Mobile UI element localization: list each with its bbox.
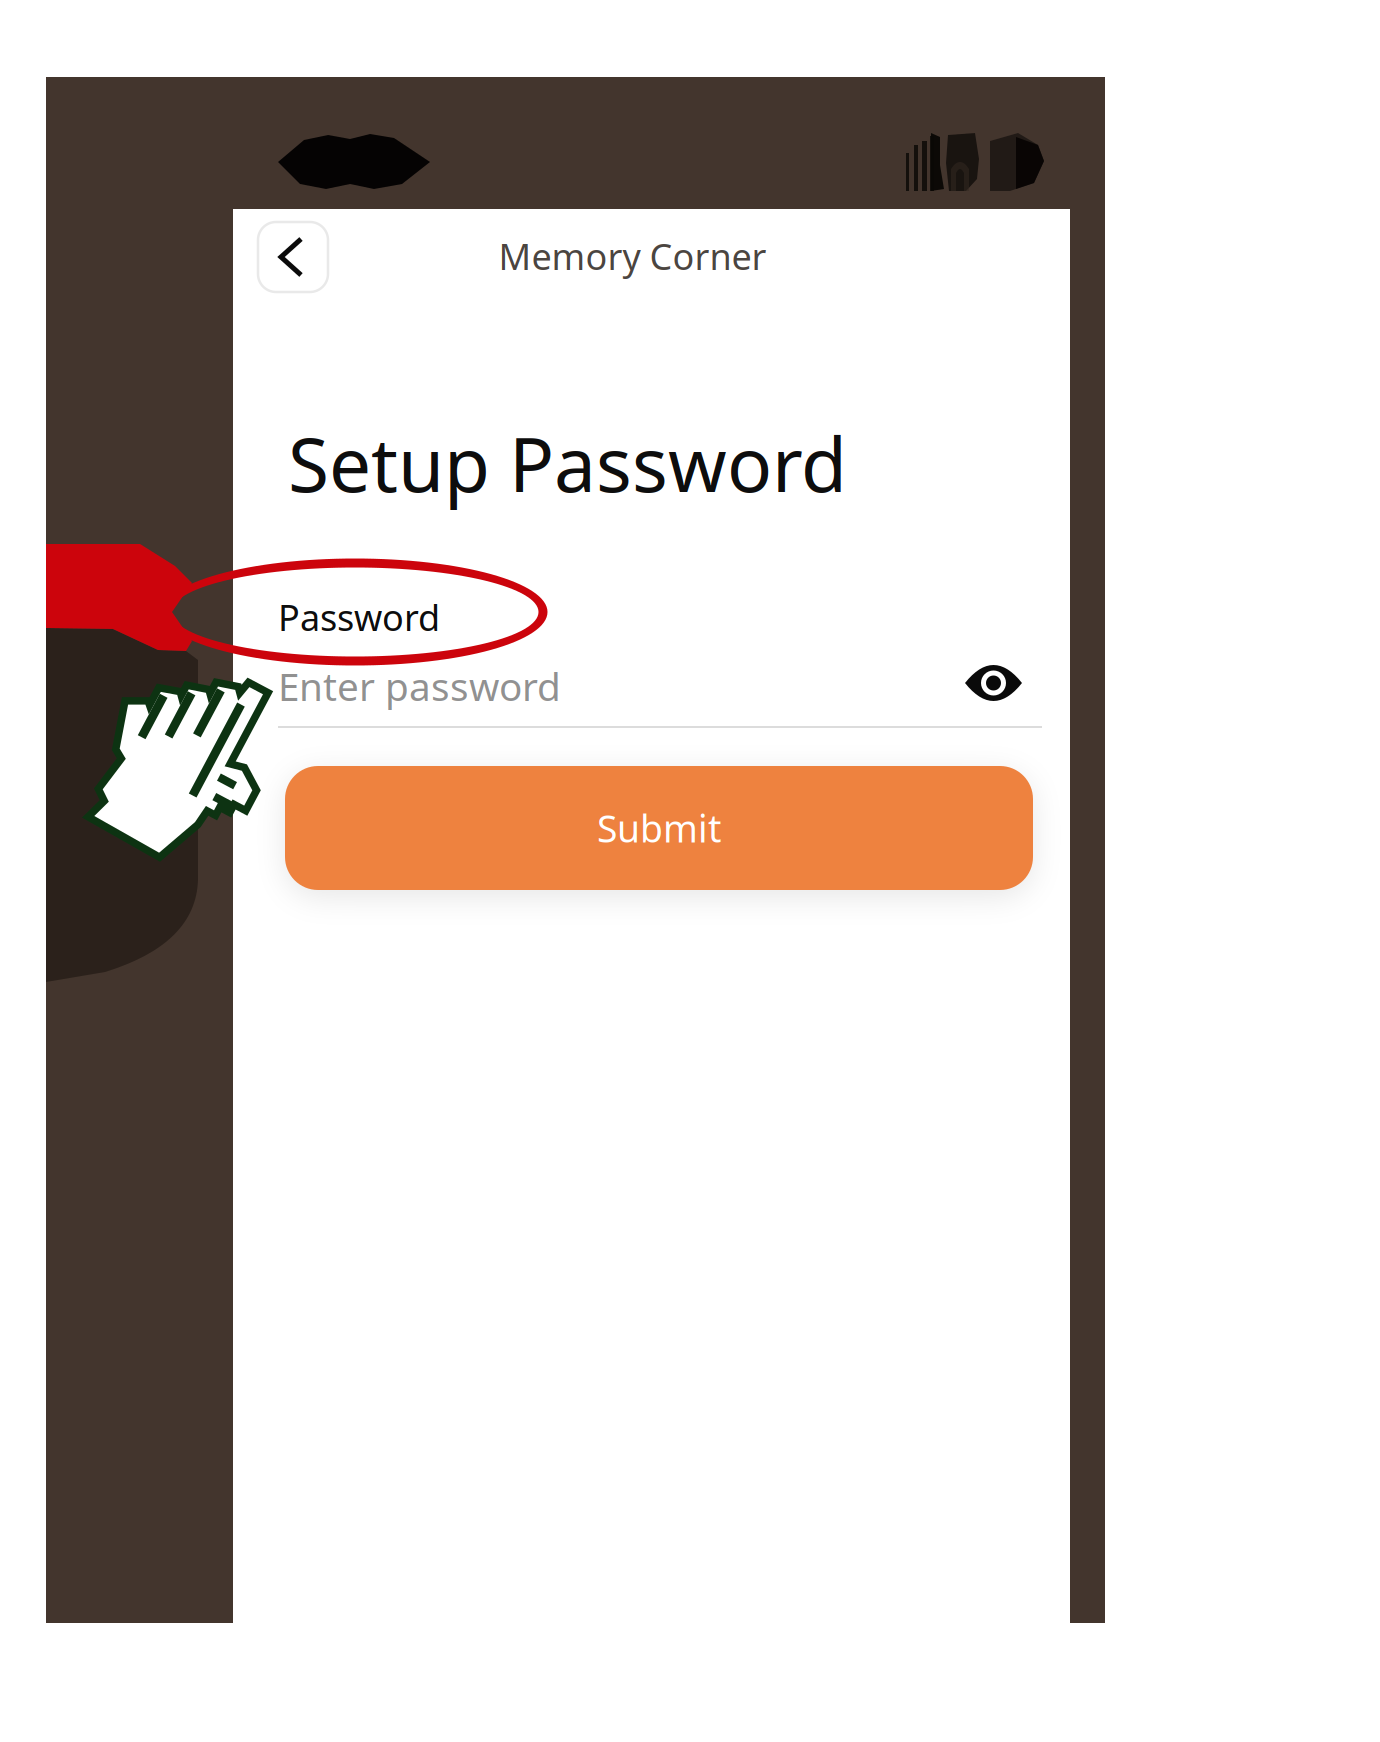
staticText: Submit — [597, 803, 721, 853]
button[interactable]: Show password — [965, 664, 1022, 702]
button[interactable]: Submit — [285, 766, 1033, 890]
staticText: Setup Password — [288, 413, 847, 513]
button[interactable]: Enter password — [278, 647, 958, 725]
staticText: Memory Corner — [498, 232, 766, 280]
staticText: Password — [278, 593, 440, 641]
button[interactable]: Back — [258, 222, 328, 292]
staticText: Enter password — [278, 660, 561, 712]
